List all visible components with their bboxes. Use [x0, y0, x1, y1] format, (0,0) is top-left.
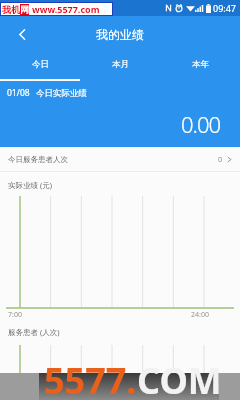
- staticText: 01/08: [7, 87, 30, 99]
- button[interactable]: Back: [6, 18, 38, 50]
- staticText: 5577.: [44, 356, 137, 400]
- staticText: 09:47: [213, 2, 237, 14]
- button[interactable]: 本月: [80, 56, 160, 73]
- button[interactable]: 今日服务患者人次: [0, 147, 240, 171]
- staticText: 0.00: [181, 109, 221, 133]
- staticText: 24:00: [191, 310, 209, 320]
- staticText: 0: [218, 154, 223, 164]
- button[interactable]: 今日: [0, 56, 80, 73]
- staticText: 实际业绩 (元): [8, 180, 52, 190]
- staticText: 服务患者 (人次): [8, 327, 60, 337]
- staticText: 我机: [2, 4, 20, 15]
- staticText: 本年: [192, 59, 209, 70]
- staticText: 今日: [32, 59, 49, 70]
- staticText: 我的业绩: [96, 27, 144, 42]
- staticText: 今日服务患者人次: [8, 155, 68, 164]
- button[interactable]: 本年: [160, 56, 240, 73]
- staticText: 7:00: [8, 310, 22, 320]
- staticText: 今日实际业绩: [36, 88, 87, 99]
- staticText: 本月: [112, 59, 129, 70]
- staticText: www.5577.com: [32, 3, 100, 15]
- staticText: 网: [20, 4, 29, 15]
- staticText: COM: [137, 356, 222, 400]
